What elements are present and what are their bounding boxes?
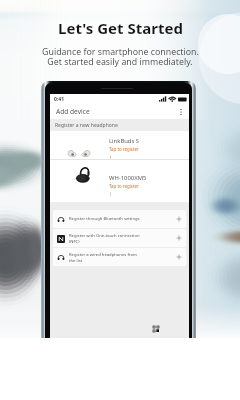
staticText: Get started easily and immediately. — [47, 56, 193, 68]
button[interactable]: More options — [175, 106, 186, 117]
staticText: WH-1000XM5 — [109, 174, 147, 182]
staticText: Register a new headphone — [55, 122, 118, 129]
staticText: Tap to register — [109, 183, 139, 189]
staticText: Add device — [56, 107, 90, 116]
staticText: Register a wired headphones from the lis… — [69, 252, 176, 263]
staticText: Let's Get Started — [58, 18, 183, 38]
staticText: LinkBuds S — [109, 137, 140, 145]
button[interactable]: LinkBuds S — [50, 131, 189, 159]
staticText: Register with One-touch connection (NFC) — [69, 233, 176, 244]
button[interactable]: Register a wired headphones from the lis… — [53, 248, 186, 266]
staticText: 0:41 — [54, 96, 64, 103]
button[interactable]: Register with One-touch connection (NFC) — [53, 229, 186, 247]
button[interactable]: Register through Bluetooth settings — [53, 210, 186, 228]
staticText: Guidance for smartphone connection. — [42, 46, 199, 58]
button[interactable]: WH-1000XM5 — [50, 160, 189, 202]
staticText: Tap to register — [109, 146, 139, 152]
staticText: Register through Bluetooth settings — [69, 216, 176, 222]
